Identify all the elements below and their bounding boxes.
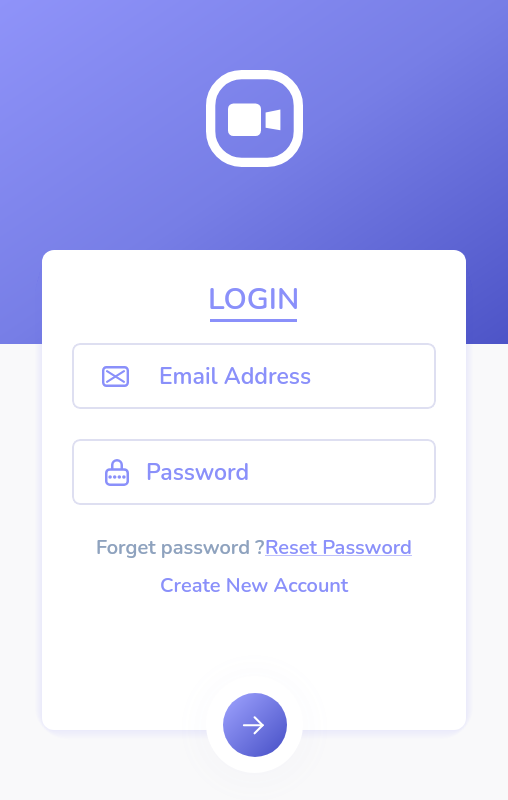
button[interactable]: Sign in [223,693,287,757]
button[interactable]: Reset Password [265,534,412,561]
button[interactable]: Forget password ? [96,534,265,561]
staticText: LOGIN [208,279,300,320]
button[interactable]: Password [72,439,436,505]
button[interactable]: Email Address [72,343,436,409]
staticText: Password [146,457,250,488]
button[interactable]: Create New Account [160,572,349,599]
staticText: Email Address [159,361,312,392]
